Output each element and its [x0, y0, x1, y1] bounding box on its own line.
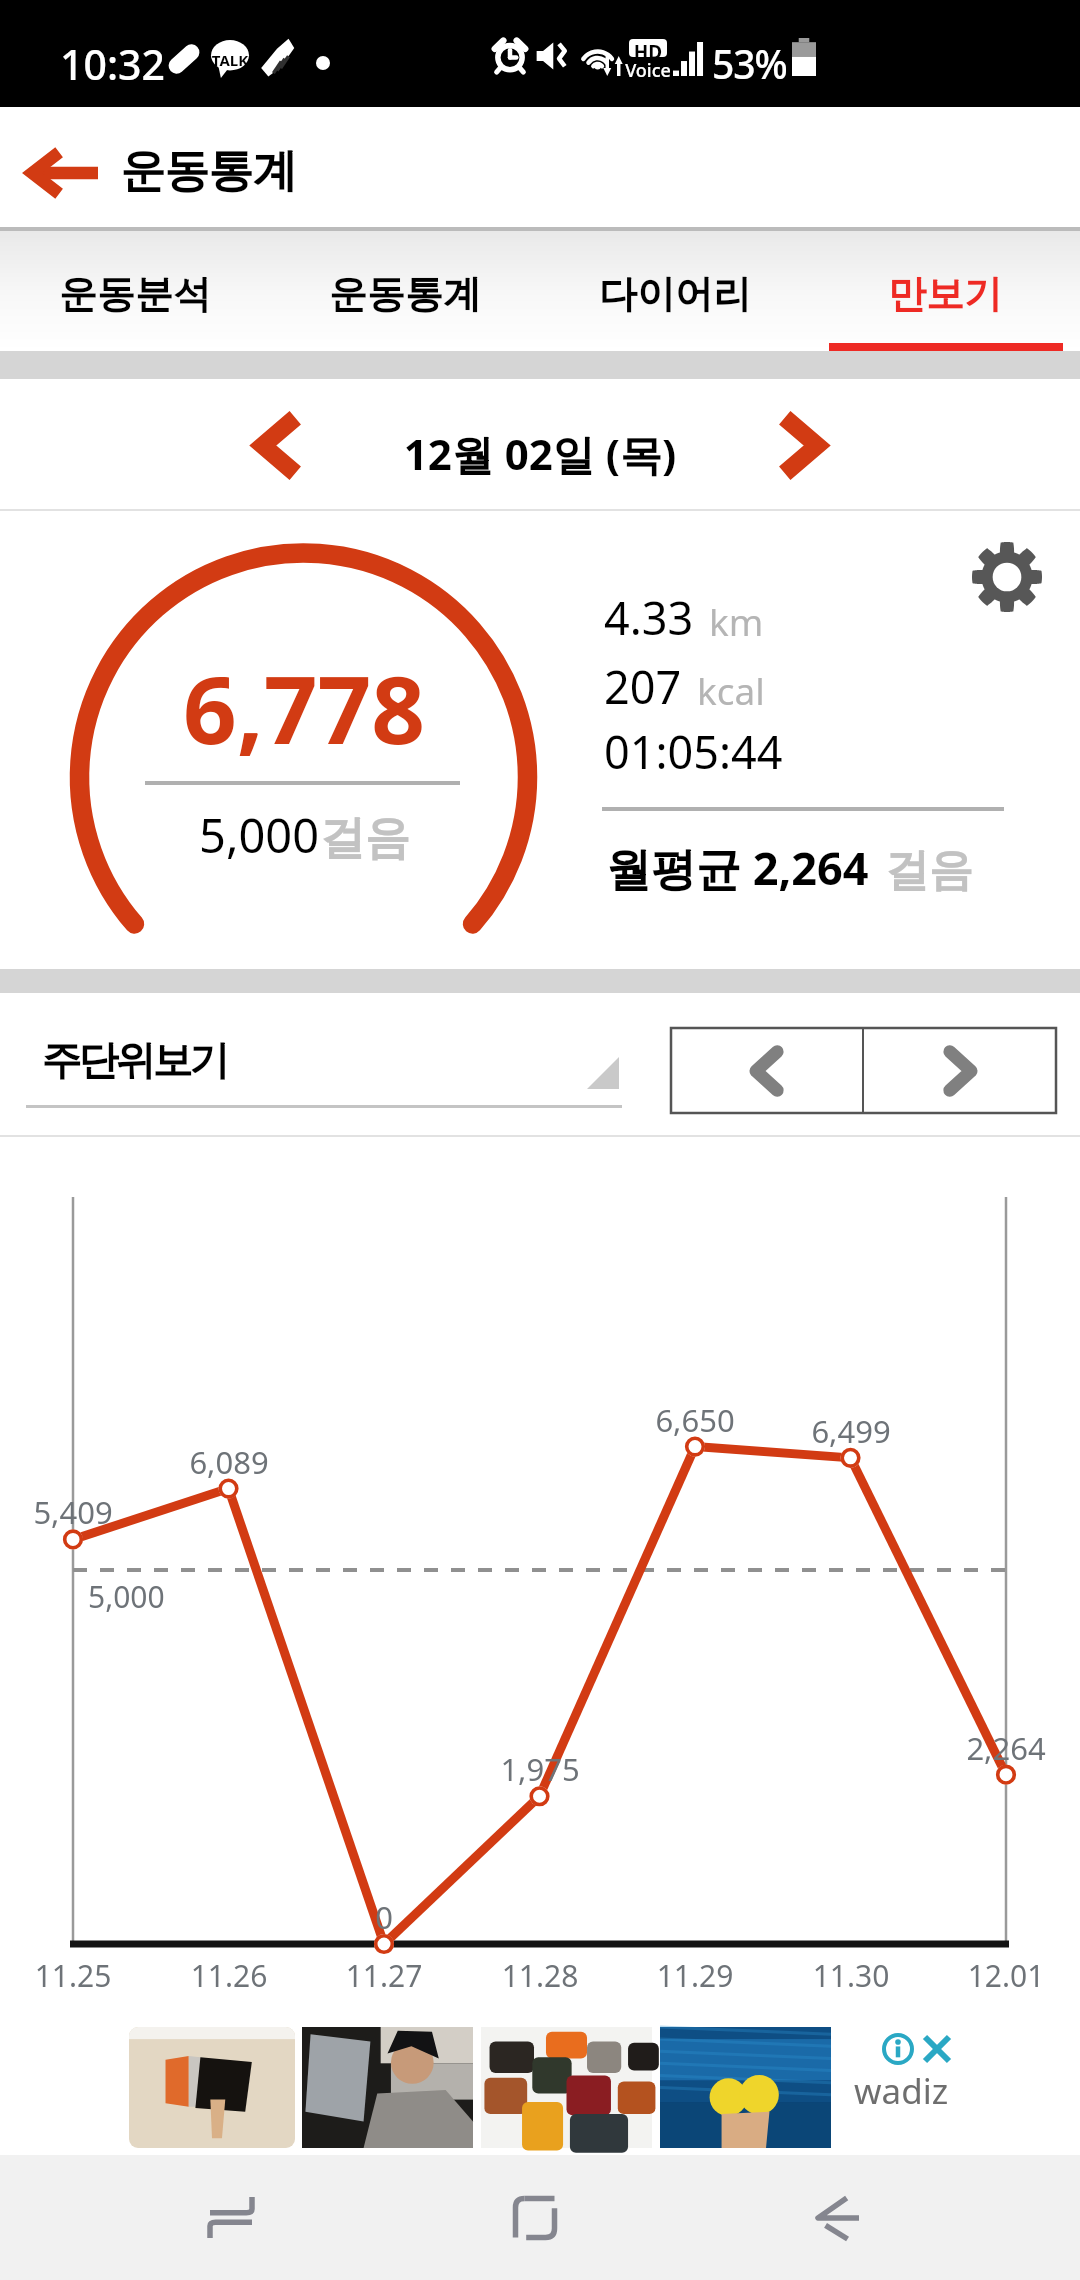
staticText: 4.33 — [604, 587, 694, 648]
staticText: TALK — [211, 50, 249, 70]
staticText: 운동통계 — [329, 270, 481, 318]
staticText: 걸음 — [320, 810, 410, 867]
staticText: kcal — [697, 665, 765, 715]
staticText: 01:05:44 — [604, 721, 783, 782]
staticText: 운동통계 — [121, 143, 297, 200]
button[interactable]: Settings — [952, 522, 1062, 632]
staticText: 주단위보기 — [43, 1035, 228, 1085]
staticText: 11.27 — [294, 1955, 474, 1996]
staticText: 12.01 — [916, 1955, 1080, 1996]
staticText: 1,975 — [450, 1748, 630, 1790]
button[interactable]: Close ad — [913, 2025, 961, 2073]
staticText: 6,499 — [761, 1410, 941, 1452]
button[interactable]: 만보기 — [810, 231, 1080, 351]
button[interactable]: Ad info — [874, 2025, 922, 2073]
staticText: 월평균 2,264 — [606, 837, 869, 898]
staticText: 5,000 — [199, 803, 320, 867]
staticText: 11.26 — [139, 1955, 319, 1996]
button[interactable]: Next week — [864, 1028, 1056, 1113]
button[interactable]: Previous week — [671, 1028, 862, 1113]
button[interactable]: 운동분석 — [0, 231, 270, 351]
staticText: 11.29 — [605, 1955, 785, 1996]
staticText: 0 — [294, 1896, 474, 1938]
button[interactable]: Advertisement 1 — [129, 2027, 295, 2148]
staticText: 5,409 — [0, 1491, 163, 1533]
staticText: 2,264 — [916, 1727, 1080, 1769]
staticText: 운동분석 — [59, 270, 211, 318]
staticText: HD — [629, 39, 667, 65]
staticText: 11.25 — [0, 1955, 163, 1996]
button[interactable]: Advertisement 3 — [481, 2027, 652, 2148]
staticText: 53% — [712, 37, 787, 90]
staticText: km — [709, 596, 764, 646]
staticText: 다이어리 — [599, 270, 751, 318]
button[interactable]: Home — [415, 2155, 655, 2280]
staticText: 11.28 — [450, 1955, 630, 1996]
staticText: 6,650 — [605, 1399, 785, 1441]
staticText: 10:32 — [60, 36, 165, 92]
button[interactable]: Back — [717, 2155, 957, 2280]
staticText: Voice — [625, 58, 671, 83]
button[interactable]: Advertisement 2 — [302, 2027, 473, 2148]
staticText: 6,778 — [104, 644, 504, 772]
button[interactable]: 운동통계 — [270, 231, 540, 351]
button[interactable]: Previous day — [229, 379, 329, 511]
button[interactable]: 주단위보기 — [26, 993, 622, 1118]
staticText: 걸음 — [885, 843, 973, 898]
button[interactable]: Recents — [111, 2155, 351, 2280]
button[interactable]: Next day — [751, 379, 851, 511]
staticText: 12월 02일 (목) — [0, 425, 1080, 482]
button[interactable]: Advertisement 4 — [660, 2027, 831, 2148]
button[interactable]: 다이어리 — [540, 231, 810, 351]
staticText: 207 — [604, 656, 682, 717]
staticText: 5,000 — [88, 1576, 165, 1617]
staticText: 11.30 — [761, 1955, 941, 1996]
staticText: wadiz — [854, 2067, 949, 2115]
staticText: 만보기 — [888, 270, 1002, 318]
staticText: 6,089 — [139, 1441, 319, 1483]
button[interactable]: Back — [0, 107, 116, 231]
